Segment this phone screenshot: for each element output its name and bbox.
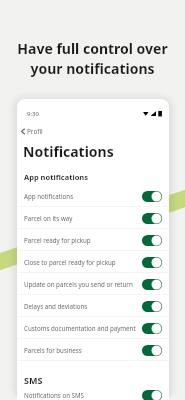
button[interactable]: Parcel ready for pickup [17, 229, 169, 251]
staticText: App notifications [24, 172, 89, 182]
button[interactable]: App notifications [17, 185, 169, 207]
button[interactable]: Parcel on its way [17, 207, 169, 229]
staticText: 9:30 [27, 110, 39, 118]
staticText: Profil [27, 127, 43, 136]
button[interactable]: Profil [17, 124, 43, 138]
other: On [142, 390, 162, 400]
staticText: SMS [24, 374, 43, 386]
other: Status icons [143, 111, 162, 117]
staticText: Parcel ready for pickup [24, 236, 139, 244]
other: On [142, 213, 162, 224]
other: On [142, 235, 162, 246]
staticText: Parcels for business [24, 346, 139, 354]
staticText: Update on parcels you send or return [24, 280, 139, 288]
staticText: Customs documentation and payment [24, 324, 139, 332]
button[interactable]: Update on parcels you send or return [17, 273, 169, 295]
button[interactable]: Close to parcel ready for pickup [17, 251, 169, 273]
staticText: Close to parcel ready for pickup [24, 258, 139, 266]
staticText: App notifications [24, 192, 139, 200]
button[interactable]: Customs documentation and payment [17, 317, 169, 339]
staticText: Notifications on SMS [24, 391, 139, 399]
other: On [142, 323, 162, 334]
other: On [142, 301, 162, 312]
button[interactable]: Delays and deviations [17, 295, 169, 317]
other: On [142, 279, 162, 290]
button[interactable]: Notifications on SMS [17, 384, 169, 400]
staticText: Notifications [23, 142, 114, 161]
staticText: Delays and deviations [24, 302, 139, 310]
staticText: Have full control over your notification… [0, 39, 185, 78]
other: On [142, 257, 162, 268]
other: On [142, 345, 162, 356]
other: On [142, 191, 162, 202]
staticText: Parcel on its way [24, 214, 139, 222]
button[interactable]: Parcels for business [17, 339, 169, 361]
